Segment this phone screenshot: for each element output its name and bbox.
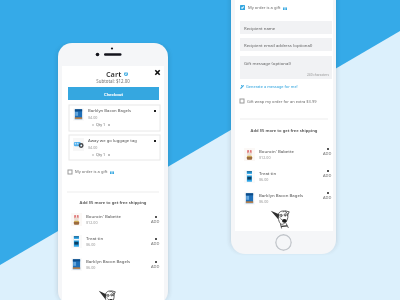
staticText: Barklyn Bacon Bagels [259,192,304,198]
staticText: Barklyn Bacon Bagels [86,258,131,264]
button[interactable]: Bouncin' Babette [62,208,164,230]
staticText: My order is a gift [248,5,281,11]
button[interactable]: Barklyn Bacon Bagels [69,105,160,131]
staticText: Recipient name [244,25,276,31]
staticText: Bouncin' Babette [86,213,122,219]
staticText: $6.00 [259,177,269,182]
staticText: $4.00 [88,145,98,150]
staticText: Away we go luggage tag [88,138,137,144]
staticText: $6.00 [86,265,96,270]
button[interactable]: Close cart [151,66,163,78]
staticText: ADD [151,241,160,246]
staticText: $4.00 [88,115,98,120]
button[interactable]: Home [275,234,292,251]
button[interactable]: Recipient name [240,21,332,34]
staticText: ADD [323,151,332,156]
staticText: Add $5 more to get free shipping [235,128,333,134]
staticText: Subtotal: $12.00 [62,78,164,84]
staticText: Recipient email address (optional) [244,42,313,48]
button[interactable]: Generate a message for me! [240,83,298,90]
staticText: Checkout [104,91,123,97]
staticText: $12.00 [259,155,271,160]
button[interactable]: Gift wrap my order for an extra $3.99 [240,97,317,105]
staticText: Gift wrap my order for an extra $3.99 [247,99,317,104]
button[interactable]: Treat tin [235,165,333,187]
staticText: Gift message (optional) [244,60,291,66]
button[interactable]: Away we go luggage tag [69,135,160,160]
staticText: ADD [323,173,332,178]
staticText: Treat tin [259,170,277,176]
staticText: Cart [106,69,122,79]
staticText: ADD [151,264,160,269]
staticText: $12.00 [86,220,98,225]
button[interactable]: My order is a gift [240,3,287,12]
button[interactable]: Recipient email address (optional) [240,38,332,51]
staticText: 2 [125,72,127,76]
button[interactable]: Treat tin [62,230,164,252]
staticText: Qty 1 [96,122,106,127]
button[interactable]: Barklyn Bacon Bagels [62,253,164,275]
staticText: ADD [151,219,160,224]
staticText: Qty 1 [96,152,106,157]
button[interactable]: Bouncin' Babette [235,143,333,165]
staticText: Add $5 more to get free shipping [62,200,164,206]
button[interactable]: Barklyn Bacon Bagels [235,187,333,209]
staticText: ADD [323,195,332,200]
staticText: 240 characters [307,73,329,77]
staticText: Generate a message for me! [246,84,298,89]
button[interactable]: Checkout [68,87,159,100]
staticText: Treat tin [86,235,104,241]
staticText: My order is a gift [75,169,108,175]
button[interactable]: My order is a gift [68,167,114,176]
button[interactable]: Remove item [152,108,157,113]
staticText: Barklyn Bacon Bagels [88,108,132,114]
staticText: $6.00 [259,199,269,204]
button[interactable]: Remove item [152,138,157,143]
staticText: $6.00 [86,242,96,247]
staticText: Bouncin' Babette [259,148,295,154]
button[interactable]: Gift message (optional) [240,56,332,79]
